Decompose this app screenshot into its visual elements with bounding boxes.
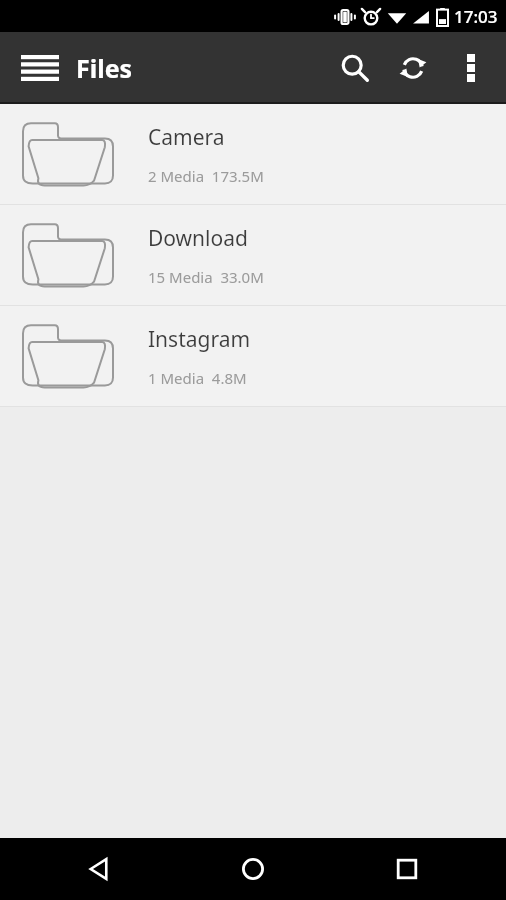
staticText: Instagram: [148, 325, 251, 354]
staticText: Camera: [148, 123, 225, 152]
staticText: 15 Media 33.0M: [148, 267, 264, 287]
button[interactable]: Instagram: [0, 306, 506, 406]
button[interactable]: Search: [326, 39, 384, 97]
button[interactable]: Back: [44, 838, 154, 900]
staticText: Download: [148, 224, 248, 253]
staticText: 1 Media 4.8M: [148, 368, 247, 388]
staticText: 17:03: [454, 5, 498, 28]
button[interactable]: Camera: [0, 104, 506, 204]
staticText: 2 Media 173.5M: [148, 166, 264, 186]
button[interactable]: Recent apps: [352, 838, 462, 900]
button[interactable]: More options: [442, 39, 500, 97]
button[interactable]: Refresh: [384, 39, 442, 97]
staticText: Files: [76, 51, 133, 85]
button[interactable]: Download: [0, 205, 506, 305]
button[interactable]: Open navigation menu: [12, 40, 68, 96]
button[interactable]: Home: [198, 838, 308, 900]
